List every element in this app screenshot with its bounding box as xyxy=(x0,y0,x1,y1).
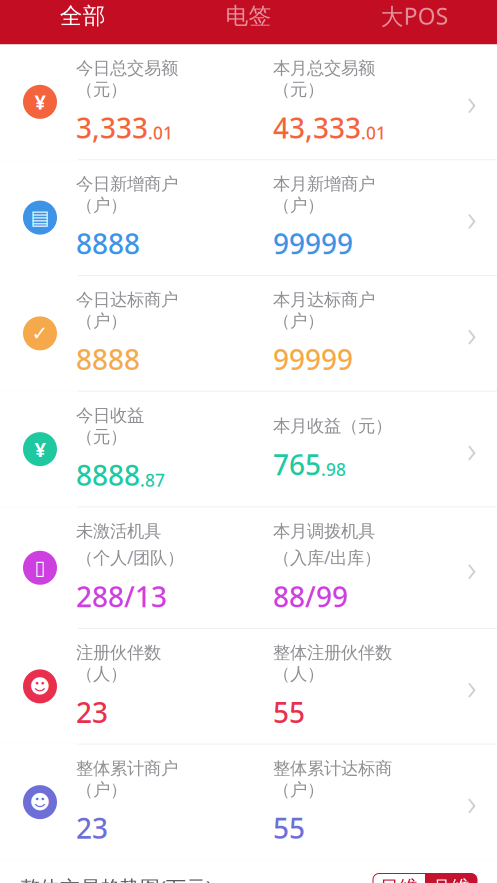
staticText: 整体注册伙伴数（人） xyxy=(273,642,392,685)
button[interactable]: 全部 xyxy=(0,0,166,44)
staticText: 288/13 xyxy=(76,578,167,615)
staticText: ✓ xyxy=(31,322,48,345)
staticText: 88/99 xyxy=(273,578,348,615)
staticText: 8888 xyxy=(76,456,140,493)
staticText: 电签 xyxy=(225,2,271,30)
staticText: › xyxy=(467,309,477,357)
staticText: 55 xyxy=(273,809,305,847)
staticText: 未激活机具 xyxy=(76,520,161,542)
button[interactable]: 日维 xyxy=(373,873,425,883)
button[interactable]: ¥ xyxy=(0,392,497,507)
staticText: ▤ xyxy=(30,206,49,229)
staticText: 765 xyxy=(273,446,321,483)
staticText: .98 xyxy=(321,458,346,481)
staticText: 注册伙伴数（人） xyxy=(76,642,161,685)
staticText: › xyxy=(467,194,477,241)
staticText: ¥ xyxy=(34,436,45,462)
staticText: 8888 xyxy=(76,341,140,378)
staticText: › xyxy=(467,662,477,710)
staticText: 今日总交易额（元） xyxy=(76,57,178,100)
staticText: 本月达标商户（户） xyxy=(273,289,375,332)
staticText: 整体累计达标商（户） xyxy=(273,758,392,800)
staticText: 本月总交易额（元） xyxy=(273,57,375,100)
staticText: 99999 xyxy=(273,341,353,378)
staticText: ¥ xyxy=(34,89,45,115)
staticText: 3,333 xyxy=(76,109,148,146)
button[interactable]: ✓ xyxy=(0,276,497,391)
button[interactable]: ¥ xyxy=(0,44,497,159)
staticText: ☻ xyxy=(29,791,50,813)
staticText: 99999 xyxy=(273,225,353,262)
staticText: › xyxy=(467,78,477,126)
staticText: .01 xyxy=(361,121,386,144)
staticText: 月维 xyxy=(432,876,470,883)
staticText: 今日达标商户（户） xyxy=(76,289,178,332)
staticText: ☻ xyxy=(29,675,50,698)
staticText: › xyxy=(467,425,477,473)
staticText: 大POS xyxy=(381,1,448,31)
button[interactable]: 大POS xyxy=(331,0,497,44)
staticText: › xyxy=(467,778,477,826)
staticText: （个人/团队） xyxy=(76,546,184,569)
button[interactable]: 电签 xyxy=(166,0,331,44)
staticText: .01 xyxy=(148,121,173,144)
button[interactable]: ☻ xyxy=(0,629,497,744)
staticText: 本月收益（元） xyxy=(273,415,392,437)
button[interactable]: ▤ xyxy=(0,160,497,275)
staticText: 全部 xyxy=(60,2,106,30)
staticText: ▯ xyxy=(34,556,45,579)
button[interactable]: ☻ xyxy=(0,745,497,860)
staticText: 55 xyxy=(273,694,305,731)
staticText: 日维 xyxy=(380,876,418,883)
staticText: 整体交易趋势图(万元) xyxy=(20,874,212,883)
staticText: .87 xyxy=(140,468,165,491)
staticText: › xyxy=(467,544,477,592)
staticText: 43,333 xyxy=(273,109,361,146)
staticText: 整体累计商户（户） xyxy=(76,758,178,800)
staticText: 23 xyxy=(76,809,108,847)
staticText: 本月新增商户（户） xyxy=(273,173,375,216)
button[interactable]: ▯ xyxy=(0,507,497,628)
staticText: 今日收益（元） xyxy=(76,405,144,447)
staticText: 8888 xyxy=(76,225,140,262)
staticText: 本月调拨机具 xyxy=(273,520,375,542)
staticText: 23 xyxy=(76,694,108,731)
button[interactable]: 月维 xyxy=(425,873,477,883)
staticText: （入库/出库） xyxy=(273,546,381,569)
staticText: 今日新增商户（户） xyxy=(76,173,178,216)
